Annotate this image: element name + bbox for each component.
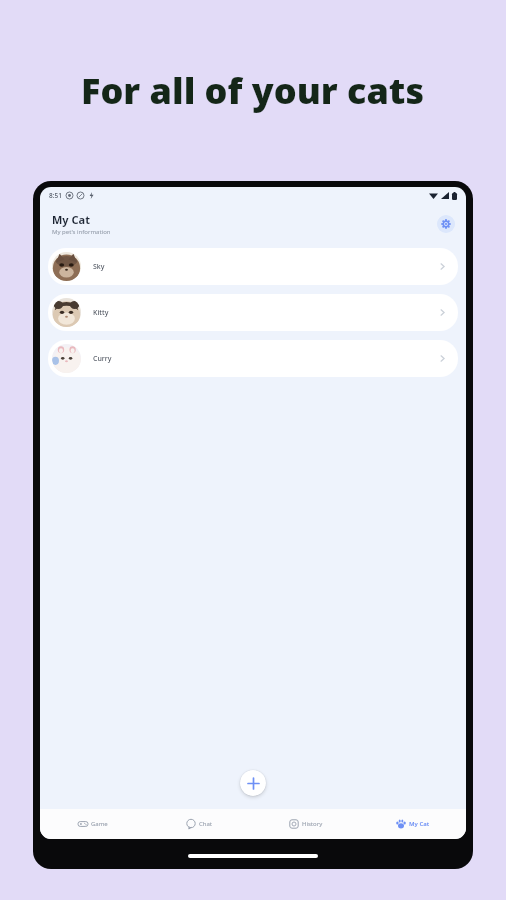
button[interactable]: My Cat bbox=[359, 809, 466, 839]
button[interactable]: Kitty bbox=[48, 294, 458, 331]
button[interactable]: Chat bbox=[146, 809, 252, 839]
button[interactable]: History bbox=[252, 809, 359, 839]
staticText: My Cat bbox=[52, 212, 90, 227]
staticText: My Cat bbox=[409, 820, 430, 828]
button[interactable]: Settings bbox=[437, 215, 455, 233]
staticText: Curry bbox=[93, 354, 112, 364]
button[interactable]: Curry bbox=[48, 340, 458, 377]
staticText: History bbox=[302, 820, 323, 828]
staticText: Sky bbox=[93, 262, 105, 272]
button[interactable]: Game bbox=[40, 809, 146, 839]
staticText: Kitty bbox=[93, 308, 109, 318]
staticText: For all of your cats bbox=[81, 66, 425, 115]
staticText: Game bbox=[91, 820, 108, 828]
button[interactable]: Add cat bbox=[240, 770, 266, 796]
staticText: 8:51 bbox=[49, 191, 62, 200]
staticText: My pet's information bbox=[52, 228, 111, 236]
button[interactable]: Sky bbox=[48, 248, 458, 285]
staticText: Chat bbox=[199, 820, 213, 828]
